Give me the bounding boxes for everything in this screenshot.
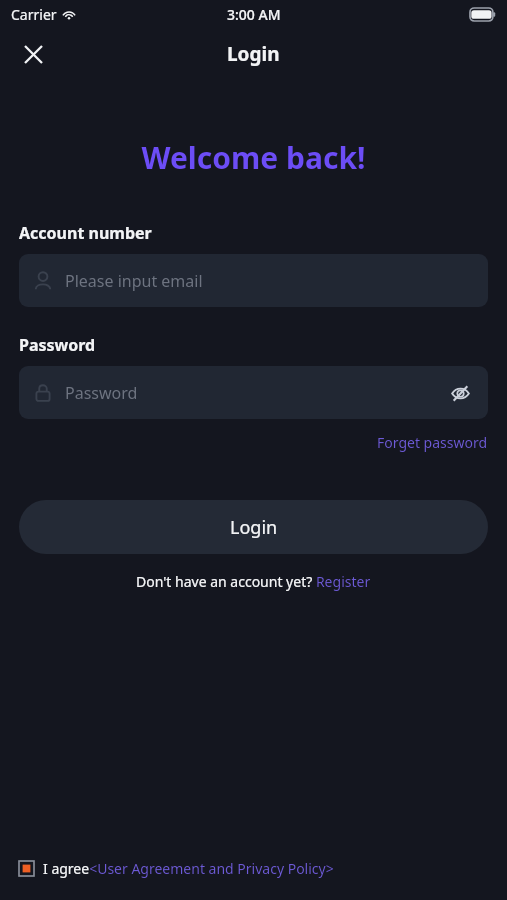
staticText: Login <box>227 41 280 67</box>
button[interactable]: Close <box>16 37 50 71</box>
staticText: Don't have an account yet? Register <box>136 572 371 591</box>
button[interactable]: Toggle password visibility <box>445 378 475 408</box>
staticText: 3:00 AM <box>227 5 281 24</box>
staticText: I agree<User Agreement and Privacy Polic… <box>43 859 334 878</box>
staticText: Welcome back! <box>0 137 507 178</box>
button[interactable]: Password <box>19 366 488 419</box>
button[interactable]: I agree<User Agreement and Privacy Polic… <box>0 855 507 882</box>
button[interactable]: Login <box>19 500 488 554</box>
staticText: Login <box>230 515 278 540</box>
staticText: Please input email <box>65 270 475 292</box>
staticText: Forget password <box>377 433 488 452</box>
button[interactable]: Please input email <box>19 254 488 307</box>
button[interactable]: Don't have an account yet? Register <box>0 568 507 595</box>
staticText: Password <box>19 334 96 356</box>
staticText: Account number <box>19 222 152 244</box>
staticText: Carrier <box>11 5 57 24</box>
staticText: Password <box>65 382 445 404</box>
button[interactable]: Forget password <box>358 429 507 456</box>
